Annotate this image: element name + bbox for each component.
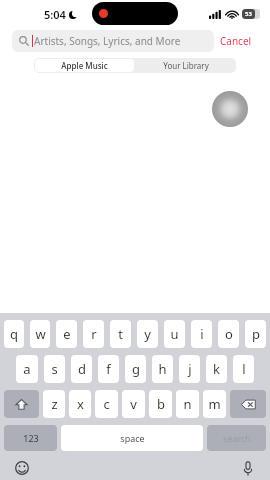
button[interactable]: Backspace	[230, 390, 266, 418]
staticText: Apple Music	[61, 60, 108, 71]
button[interactable]: Artists, Songs, Lyrics, and More	[12, 30, 214, 52]
staticText: s	[51, 360, 58, 378]
button[interactable]: j	[179, 355, 200, 383]
staticText: a	[23, 360, 31, 378]
staticText: search	[223, 432, 251, 444]
staticText: y	[144, 325, 151, 343]
button[interactable]: m	[203, 390, 226, 418]
staticText: t	[118, 325, 123, 343]
button[interactable]: Dictation	[238, 458, 258, 478]
button[interactable]: h	[152, 355, 173, 383]
staticText: q	[10, 325, 18, 343]
staticText: z	[51, 395, 58, 413]
button[interactable]: d	[71, 355, 92, 383]
button[interactable]: 123	[4, 425, 57, 451]
button[interactable]: i	[191, 320, 212, 348]
staticText: p	[252, 325, 260, 343]
staticText: b	[157, 395, 165, 413]
button[interactable]: x	[69, 390, 91, 418]
staticText: 123	[23, 432, 39, 444]
staticText: o	[225, 325, 233, 343]
button[interactable]: Your Library	[135, 58, 236, 73]
staticText: r	[91, 325, 97, 343]
button[interactable]: c	[95, 390, 118, 418]
button[interactable]: v	[122, 390, 145, 418]
button[interactable]: e	[56, 320, 77, 348]
staticText: l	[242, 360, 246, 378]
staticText: Artists, Songs, Lyrics, and More	[34, 34, 181, 48]
staticText: e	[63, 325, 71, 343]
button[interactable]: s	[44, 355, 65, 383]
staticText: c	[103, 395, 110, 413]
staticText: 5:04	[44, 7, 66, 22]
staticText: 53	[245, 10, 252, 18]
staticText: m	[208, 395, 221, 413]
button[interactable]: z	[43, 390, 65, 418]
button[interactable]: u	[164, 320, 185, 348]
button[interactable]: t	[110, 320, 131, 348]
staticText: d	[78, 360, 86, 378]
staticText: j	[188, 360, 192, 378]
button[interactable]: n	[176, 390, 199, 418]
button[interactable]: o	[218, 320, 239, 348]
button[interactable]: a	[16, 355, 38, 383]
staticText: space	[120, 432, 145, 444]
staticText: k	[213, 360, 220, 378]
staticText: Your Library	[163, 60, 209, 71]
staticText: n	[183, 395, 192, 413]
button[interactable]: Shift	[4, 390, 39, 418]
button[interactable]: b	[149, 390, 172, 418]
staticText: v	[130, 395, 137, 413]
staticText: h	[158, 360, 167, 378]
staticText: f	[106, 360, 111, 378]
button[interactable]: r	[83, 320, 104, 348]
staticText: x	[77, 395, 84, 413]
button[interactable]: q	[4, 320, 24, 348]
button[interactable]: f	[98, 355, 119, 383]
staticText: Cancel	[220, 34, 252, 48]
button[interactable]: Apple Music	[35, 59, 134, 72]
button[interactable]: Emoji	[12, 458, 32, 478]
button[interactable]: p	[245, 320, 266, 348]
button[interactable]: space	[61, 425, 203, 451]
button[interactable]: k	[206, 355, 227, 383]
button[interactable]: g	[125, 355, 146, 383]
staticText: g	[132, 360, 140, 378]
button[interactable]: search	[207, 425, 266, 451]
button[interactable]: y	[137, 320, 158, 348]
staticText: u	[170, 325, 179, 343]
button[interactable]: l	[233, 355, 254, 383]
button[interactable]: w	[30, 320, 50, 348]
button[interactable]: Cancel	[214, 31, 258, 51]
staticText: w	[35, 325, 46, 343]
staticText: i	[200, 325, 204, 343]
